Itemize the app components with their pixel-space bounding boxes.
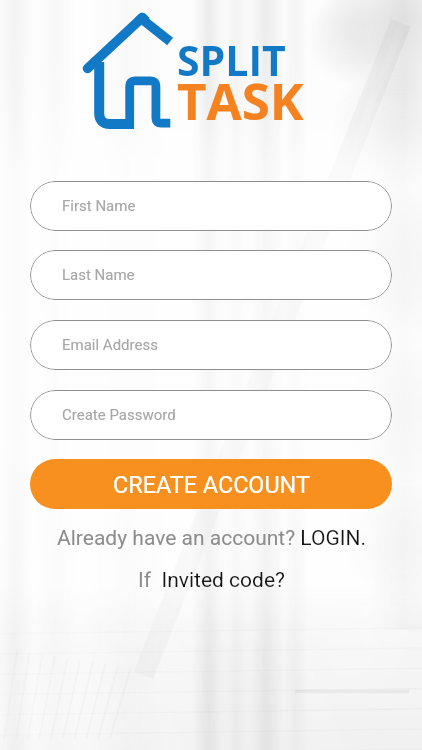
button[interactable]: Already have an account? LOGIN. <box>0 523 422 553</box>
staticText: CREATE ACCOUNT <box>113 471 310 498</box>
button[interactable]: If Invited code? <box>0 565 422 595</box>
button[interactable]: Create Password <box>30 390 392 440</box>
staticText: First Name <box>62 197 136 215</box>
button[interactable]: Last Name <box>30 250 392 300</box>
staticText: If Invited code? <box>138 568 285 593</box>
button[interactable]: Email Address <box>30 320 392 370</box>
staticText: Email Address <box>62 336 158 354</box>
button[interactable]: CREATE ACCOUNT <box>30 459 392 509</box>
staticText: TASK <box>177 65 304 134</box>
other: SplitTask logo <box>82 8 174 132</box>
button[interactable]: First Name <box>30 181 392 231</box>
staticText: Already have an account? LOGIN. <box>57 526 366 551</box>
staticText: Last Name <box>62 266 135 284</box>
staticText: Create Password <box>62 406 176 424</box>
staticText: SPLIT <box>177 32 286 88</box>
